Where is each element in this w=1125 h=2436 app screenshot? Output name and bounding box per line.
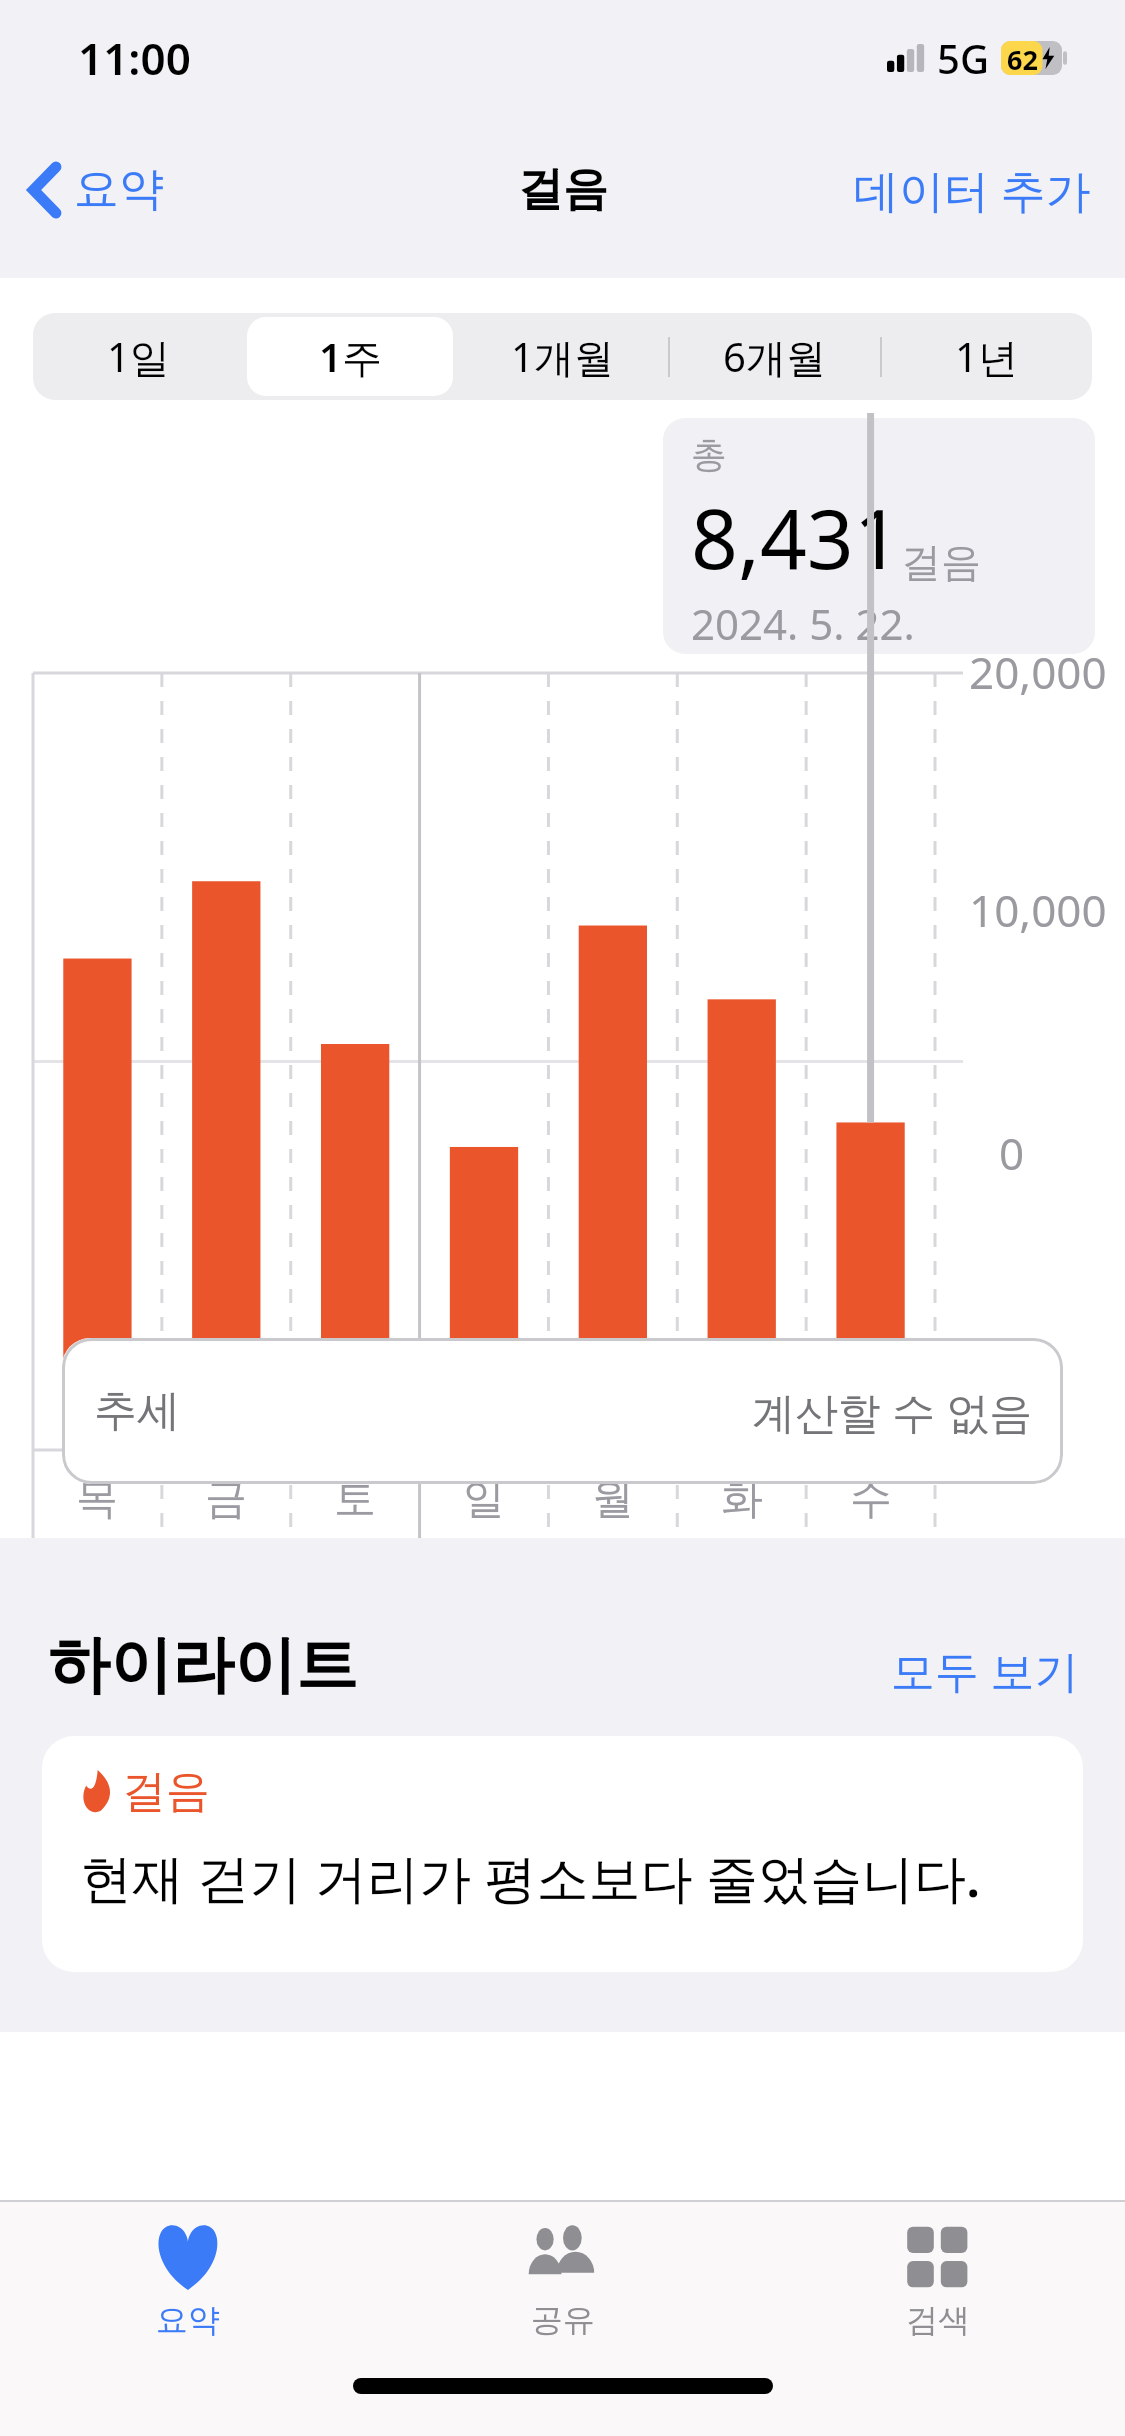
button[interactable]: 추세 bbox=[62, 1338, 1063, 1484]
staticText: 화 bbox=[721, 1473, 763, 1526]
staticText: 1주 bbox=[319, 329, 382, 384]
staticText: 0 bbox=[999, 1123, 1025, 1183]
button[interactable]: 검색 bbox=[750, 2202, 1125, 2350]
staticText: 8,431 bbox=[691, 481, 901, 593]
staticText: 공유 bbox=[531, 2300, 595, 2340]
staticText: 금 bbox=[205, 1473, 247, 1526]
staticText: 계산할 수 없음 bbox=[752, 1382, 1033, 1441]
button[interactable]: 요약 bbox=[26, 151, 170, 228]
staticText: 걸음 bbox=[122, 1764, 210, 1819]
staticText: 목 bbox=[76, 1473, 118, 1526]
staticText: 하이라이트 bbox=[48, 1626, 358, 1704]
staticText: 11:00 bbox=[78, 28, 191, 88]
button[interactable]: 1개월 bbox=[456, 313, 668, 400]
staticText: 현재 걷기 거리가 평소보다 줄었습니다. bbox=[80, 1841, 981, 1912]
staticText: 검색 bbox=[906, 2300, 970, 2340]
other: 요약 bbox=[149, 2224, 227, 2290]
staticText: 수 bbox=[850, 1473, 892, 1526]
staticText: 6개월 bbox=[723, 329, 826, 384]
button[interactable]: 6개월 bbox=[668, 313, 880, 400]
other: 검색 bbox=[903, 2224, 973, 2290]
staticText: 62 bbox=[1007, 41, 1038, 75]
staticText: 20,000 bbox=[969, 642, 1107, 702]
button[interactable]: 데이터 추가 bbox=[848, 149, 1097, 230]
staticText: 추세 bbox=[94, 1384, 180, 1438]
button[interactable]: 1주 bbox=[244, 313, 456, 400]
staticText: 10,000 bbox=[969, 880, 1107, 940]
staticText: 걸음 bbox=[518, 161, 608, 218]
staticText: 토 bbox=[334, 1473, 376, 1526]
button[interactable]: 공유 bbox=[375, 2202, 750, 2350]
button[interactable]: 1일 bbox=[33, 313, 244, 400]
staticText: 요약 bbox=[156, 2300, 220, 2340]
staticText: 2024. 5. 22. bbox=[691, 595, 915, 652]
button[interactable]: 모두 보기 bbox=[887, 1636, 1083, 1704]
staticText: 총 bbox=[691, 432, 727, 477]
staticText: 걸음 bbox=[901, 537, 981, 587]
button[interactable]: 걸음 bbox=[42, 1736, 1083, 1972]
button[interactable]: 요약 bbox=[0, 2202, 375, 2350]
staticText: 일 bbox=[463, 1473, 505, 1526]
staticText: 1년 bbox=[955, 329, 1018, 384]
staticText: 요약 bbox=[74, 161, 164, 218]
staticText: 1개월 bbox=[511, 329, 614, 384]
staticText: 5G bbox=[937, 31, 989, 85]
button[interactable]: 1년 bbox=[880, 313, 1092, 400]
other: 공유 bbox=[524, 2224, 602, 2290]
staticText: 월 bbox=[592, 1473, 634, 1526]
staticText: 1일 bbox=[107, 329, 170, 384]
